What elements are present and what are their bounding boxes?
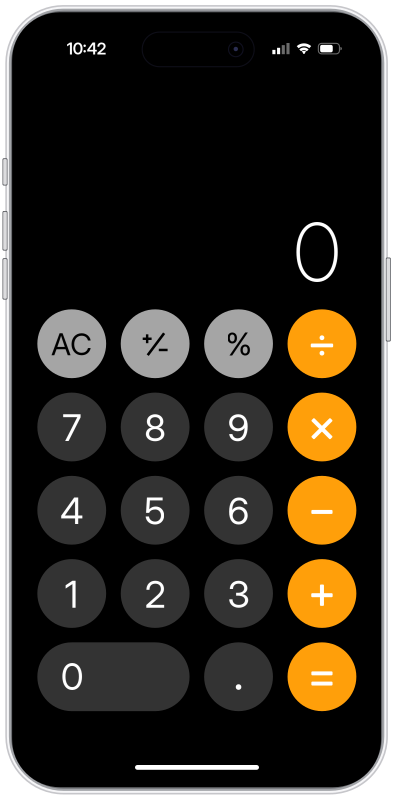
staticText: 5 [144,488,166,533]
button[interactable]: AC [37,309,106,378]
staticText: 2 [145,571,166,617]
staticText: 3 [228,571,250,617]
button[interactable]: % [204,309,273,378]
staticText: AC [51,326,92,362]
button[interactable]: 1 [37,559,106,628]
button[interactable] [288,559,356,628]
button[interactable]: 0 [37,642,190,711]
button[interactable]: 2 [121,559,190,628]
button[interactable]: 8 [121,393,190,461]
staticText: 8 [144,405,166,450]
button[interactable]: 4 [37,476,106,545]
staticText: 7 [62,405,81,450]
button[interactable] [288,476,356,545]
button[interactable] [288,309,356,378]
staticText: 6 [228,488,250,533]
staticText: 4 [60,488,83,533]
staticText: 10:42 [67,39,107,58]
staticText: 1 [65,571,79,617]
staticText: 9 [228,405,250,450]
staticText: 0 [293,202,340,302]
button[interactable]: 7 [37,393,106,461]
staticText: % [226,325,252,363]
button[interactable] [288,642,356,711]
button[interactable]: 6 [204,476,273,545]
button[interactable] [121,309,190,378]
button[interactable] [288,393,356,461]
button[interactable]: 5 [121,476,190,545]
button[interactable]: 3 [204,559,273,628]
button[interactable]: 9 [204,393,273,461]
staticText: 0 [61,654,84,699]
button[interactable] [204,642,273,711]
